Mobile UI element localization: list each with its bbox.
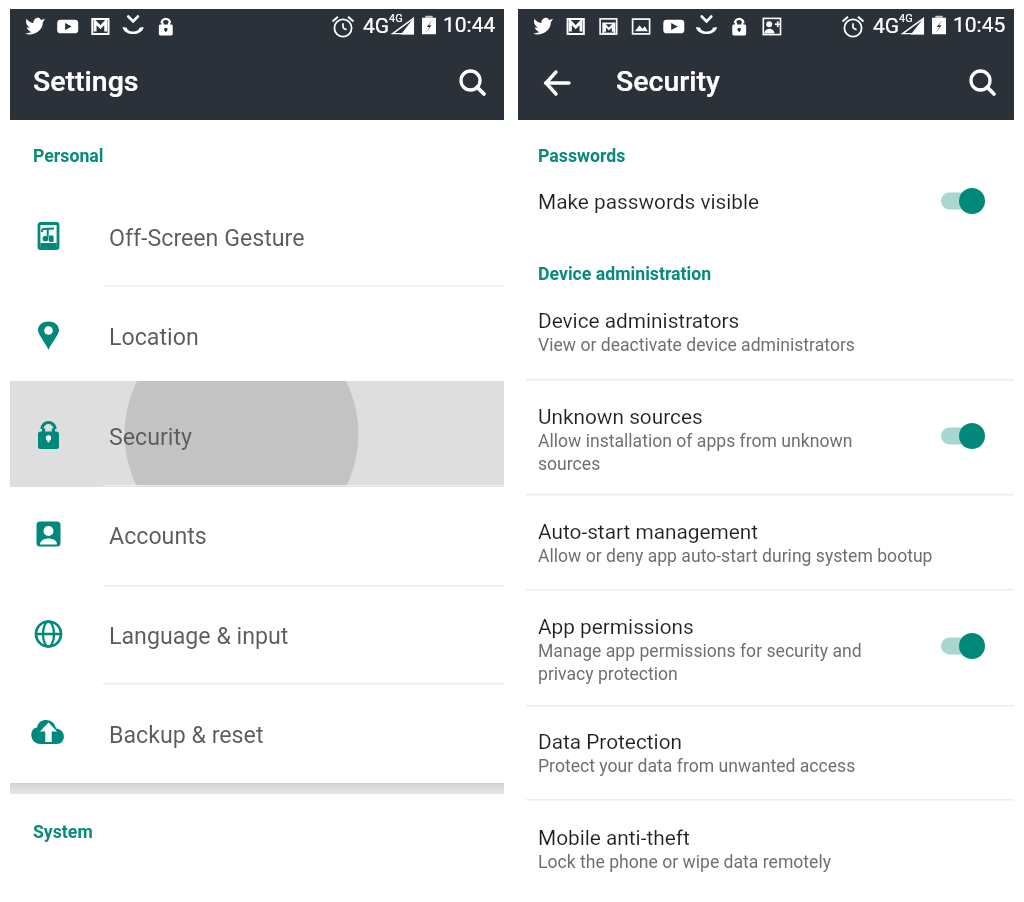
- staticText: Language & input: [109, 622, 289, 649]
- staticText: Passwords: [538, 146, 626, 167]
- staticText: Location: [109, 323, 199, 350]
- staticText: Manage app permissions for security and …: [538, 641, 870, 685]
- staticText: Protect your data from unwanted access: [538, 756, 968, 777]
- button[interactable]: [10, 381, 504, 487]
- staticText: Lock the phone or wipe data remotely: [538, 852, 968, 873]
- staticText: 10:45: [953, 13, 1006, 38]
- button[interactable]: Toggle: [941, 178, 987, 224]
- staticText: Security: [616, 65, 720, 98]
- staticText: Accounts: [109, 522, 207, 549]
- staticText: Data Protection: [538, 730, 682, 754]
- staticText: App permissions: [538, 615, 694, 639]
- staticText: Auto-start management: [538, 520, 759, 544]
- staticText: Make passwords visible: [538, 190, 760, 214]
- staticText: Unknown sources: [538, 405, 703, 429]
- staticText: 10:44: [443, 13, 496, 38]
- staticText: Settings: [33, 65, 139, 98]
- button[interactable]: [10, 584, 504, 684]
- button[interactable]: [10, 385, 504, 485]
- staticText: Mobile anti-theft: [538, 826, 690, 850]
- staticText: 4G: [899, 12, 913, 25]
- staticText: 4G: [873, 14, 900, 39]
- button[interactable]: [518, 724, 1014, 799]
- button[interactable]: [10, 684, 504, 784]
- staticText: Backup & reset: [109, 721, 264, 748]
- button[interactable]: [518, 609, 1014, 705]
- staticText: Personal: [33, 146, 104, 167]
- staticText: 4G: [389, 12, 403, 25]
- button[interactable]: Search: [957, 57, 1009, 109]
- button[interactable]: [518, 184, 1014, 237]
- staticText: System: [33, 822, 93, 843]
- staticText: Allow or deny app auto-start during syst…: [538, 546, 958, 567]
- button[interactable]: [10, 186, 504, 286]
- button[interactable]: Toggle: [941, 413, 987, 459]
- staticText: View or deactivate device administrators: [538, 335, 958, 356]
- button[interactable]: Search: [447, 57, 499, 109]
- button[interactable]: Toggle: [941, 623, 987, 669]
- button[interactable]: Back: [532, 58, 582, 108]
- staticText: Device administrators: [538, 309, 740, 333]
- staticText: Security: [109, 423, 193, 450]
- staticText: Off-Screen Gesture: [109, 224, 305, 251]
- button[interactable]: [10, 286, 504, 386]
- button[interactable]: [10, 485, 504, 585]
- staticText: Device administration: [538, 264, 712, 285]
- staticText: 4G: [363, 14, 390, 39]
- staticText: Allow installation of apps from unknown …: [538, 431, 854, 475]
- button[interactable]: [518, 820, 1014, 884]
- button[interactable]: [518, 514, 1014, 589]
- button[interactable]: [518, 399, 1014, 494]
- button[interactable]: [518, 304, 1014, 379]
